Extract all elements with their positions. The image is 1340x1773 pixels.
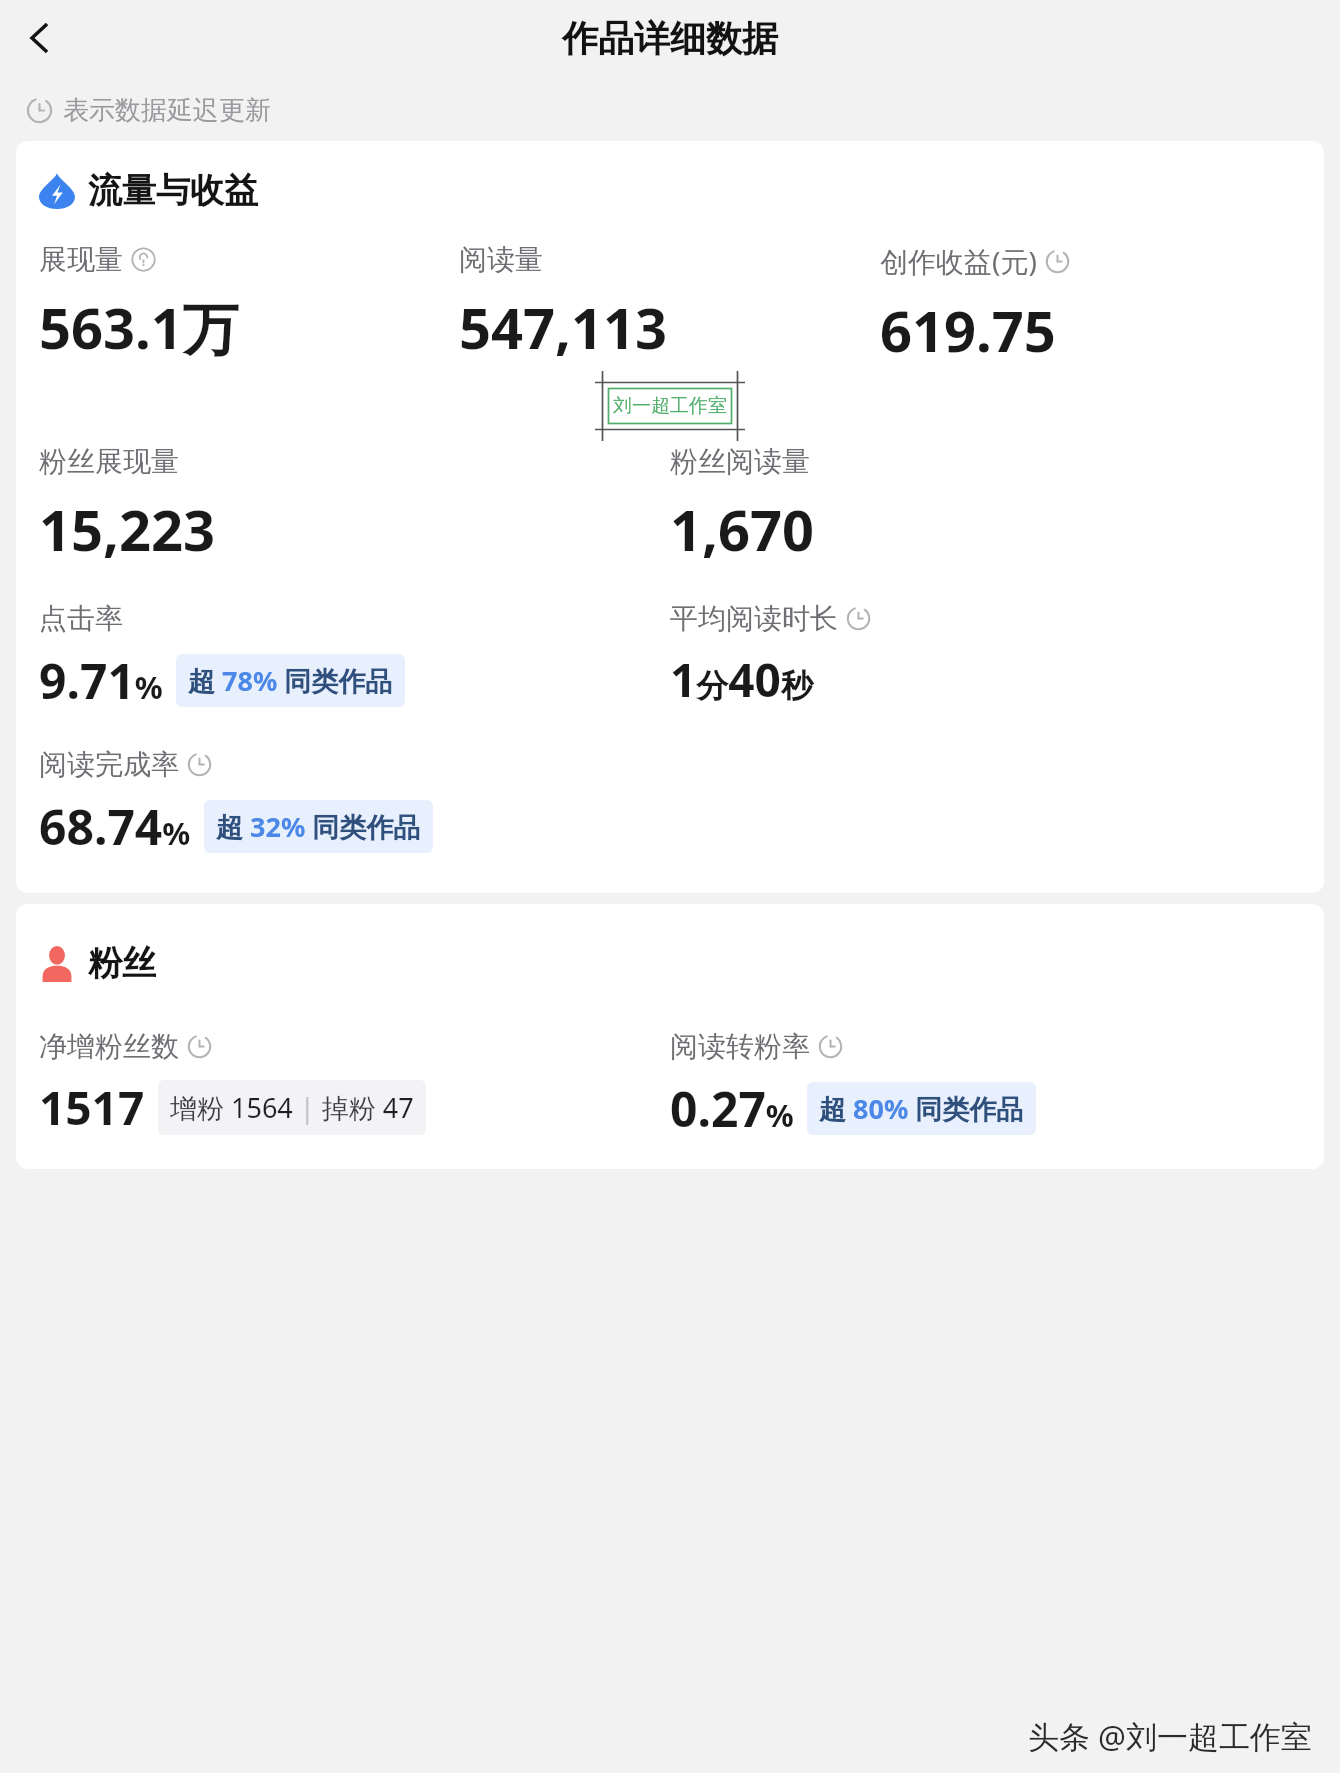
staticText: 阅读量 — [459, 242, 543, 277]
staticText: 粉丝 — [88, 942, 156, 985]
staticText: 0.27% — [670, 1076, 794, 1141]
staticText: 1517 — [39, 1076, 145, 1139]
staticText: 68.74% — [39, 794, 191, 859]
button[interactable]: 超 80% 同类作品 — [807, 1082, 1036, 1135]
staticText: 点击率 — [39, 601, 123, 636]
staticText: 刘一超工作室 — [613, 394, 727, 418]
staticText: 阅读完成率 — [39, 747, 179, 782]
button[interactable]: 超 78% 同类作品 — [176, 654, 405, 707]
staticText: 超 80% 同类作品 — [819, 1090, 1024, 1127]
staticText: 净增粉丝数 — [39, 1029, 179, 1064]
staticText: 阅读转粉率 — [670, 1029, 810, 1064]
staticText: 超 32% 同类作品 — [216, 808, 421, 845]
staticText: 创作收益(元) — [880, 242, 1037, 280]
staticText: 增粉 1564 | 掉粉 47 — [170, 1089, 414, 1126]
staticText: 平均阅读时长 — [670, 601, 838, 636]
button[interactable]: Back — [12, 10, 68, 66]
staticText: 粉丝阅读量 — [670, 444, 810, 479]
staticText: 563.1万 — [39, 289, 239, 365]
staticText: 头条 @刘一超工作室 — [1028, 1715, 1312, 1757]
staticText: 流量与收益 — [88, 169, 258, 212]
staticText: 超 78% 同类作品 — [188, 662, 393, 699]
staticText: 粉丝展现量 — [39, 444, 179, 479]
staticText: 表示数据延迟更新 — [63, 94, 271, 127]
staticText: 展现量 — [39, 242, 123, 277]
staticText: 15,223 — [39, 491, 216, 567]
staticText: 547,113 — [459, 289, 668, 365]
button[interactable]: 超 32% 同类作品 — [204, 800, 433, 853]
staticText: 1,670 — [670, 491, 815, 567]
staticText: 9.71% — [39, 648, 163, 713]
button[interactable]: 增粉 1564 | 掉粉 47 — [158, 1080, 426, 1135]
staticText: 619.75 — [880, 292, 1056, 368]
staticText: 作品详细数据 — [562, 16, 778, 61]
staticText: 1分40秒 — [670, 648, 813, 711]
